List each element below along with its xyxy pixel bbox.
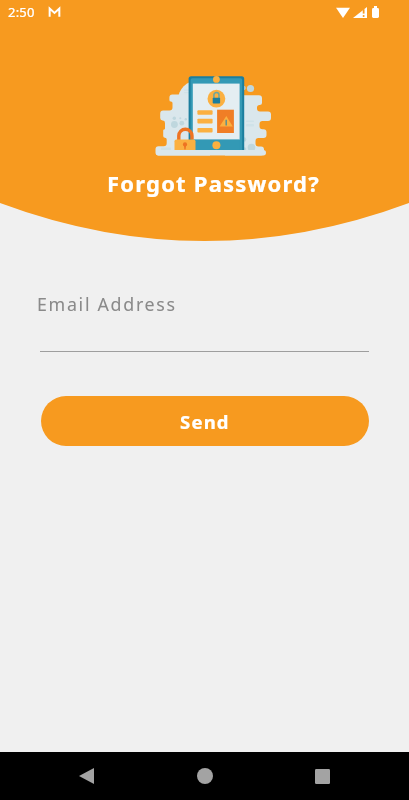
staticText: Send <box>180 409 230 434</box>
staticText: Email Address <box>37 292 177 316</box>
button[interactable]: Recent apps <box>294 752 350 800</box>
button[interactable]: Back <box>58 752 114 800</box>
staticText: 2:50 <box>8 3 35 21</box>
button[interactable]: Send <box>41 396 369 446</box>
staticText: Forgot Password? <box>107 168 320 198</box>
button[interactable]: Home <box>177 752 233 800</box>
